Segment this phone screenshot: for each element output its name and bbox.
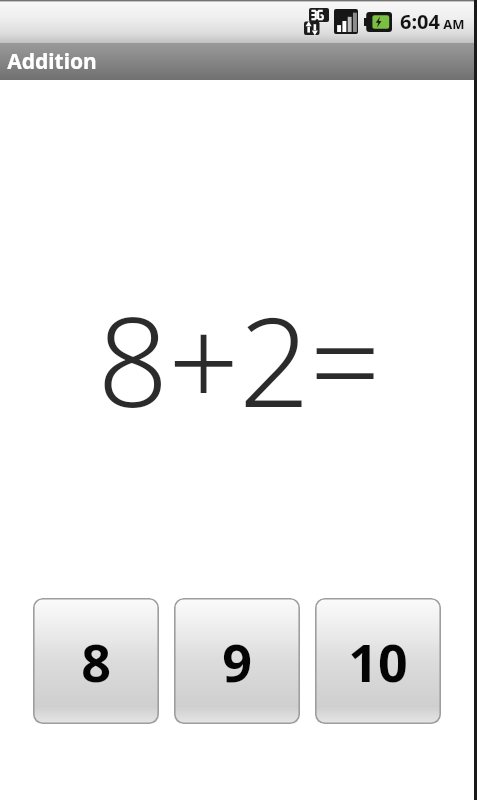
button[interactable]: 8: [33, 598, 159, 724]
staticText: Addition: [7, 47, 97, 76]
staticText: 10: [348, 626, 408, 697]
button[interactable]: 10: [315, 598, 441, 724]
staticText: AM: [443, 15, 465, 33]
button[interactable]: 9: [174, 598, 300, 724]
staticText: 8+2=: [97, 274, 381, 443]
staticText: 6:04: [400, 8, 440, 35]
staticText: 8: [81, 626, 111, 697]
staticText: 9: [222, 626, 252, 697]
